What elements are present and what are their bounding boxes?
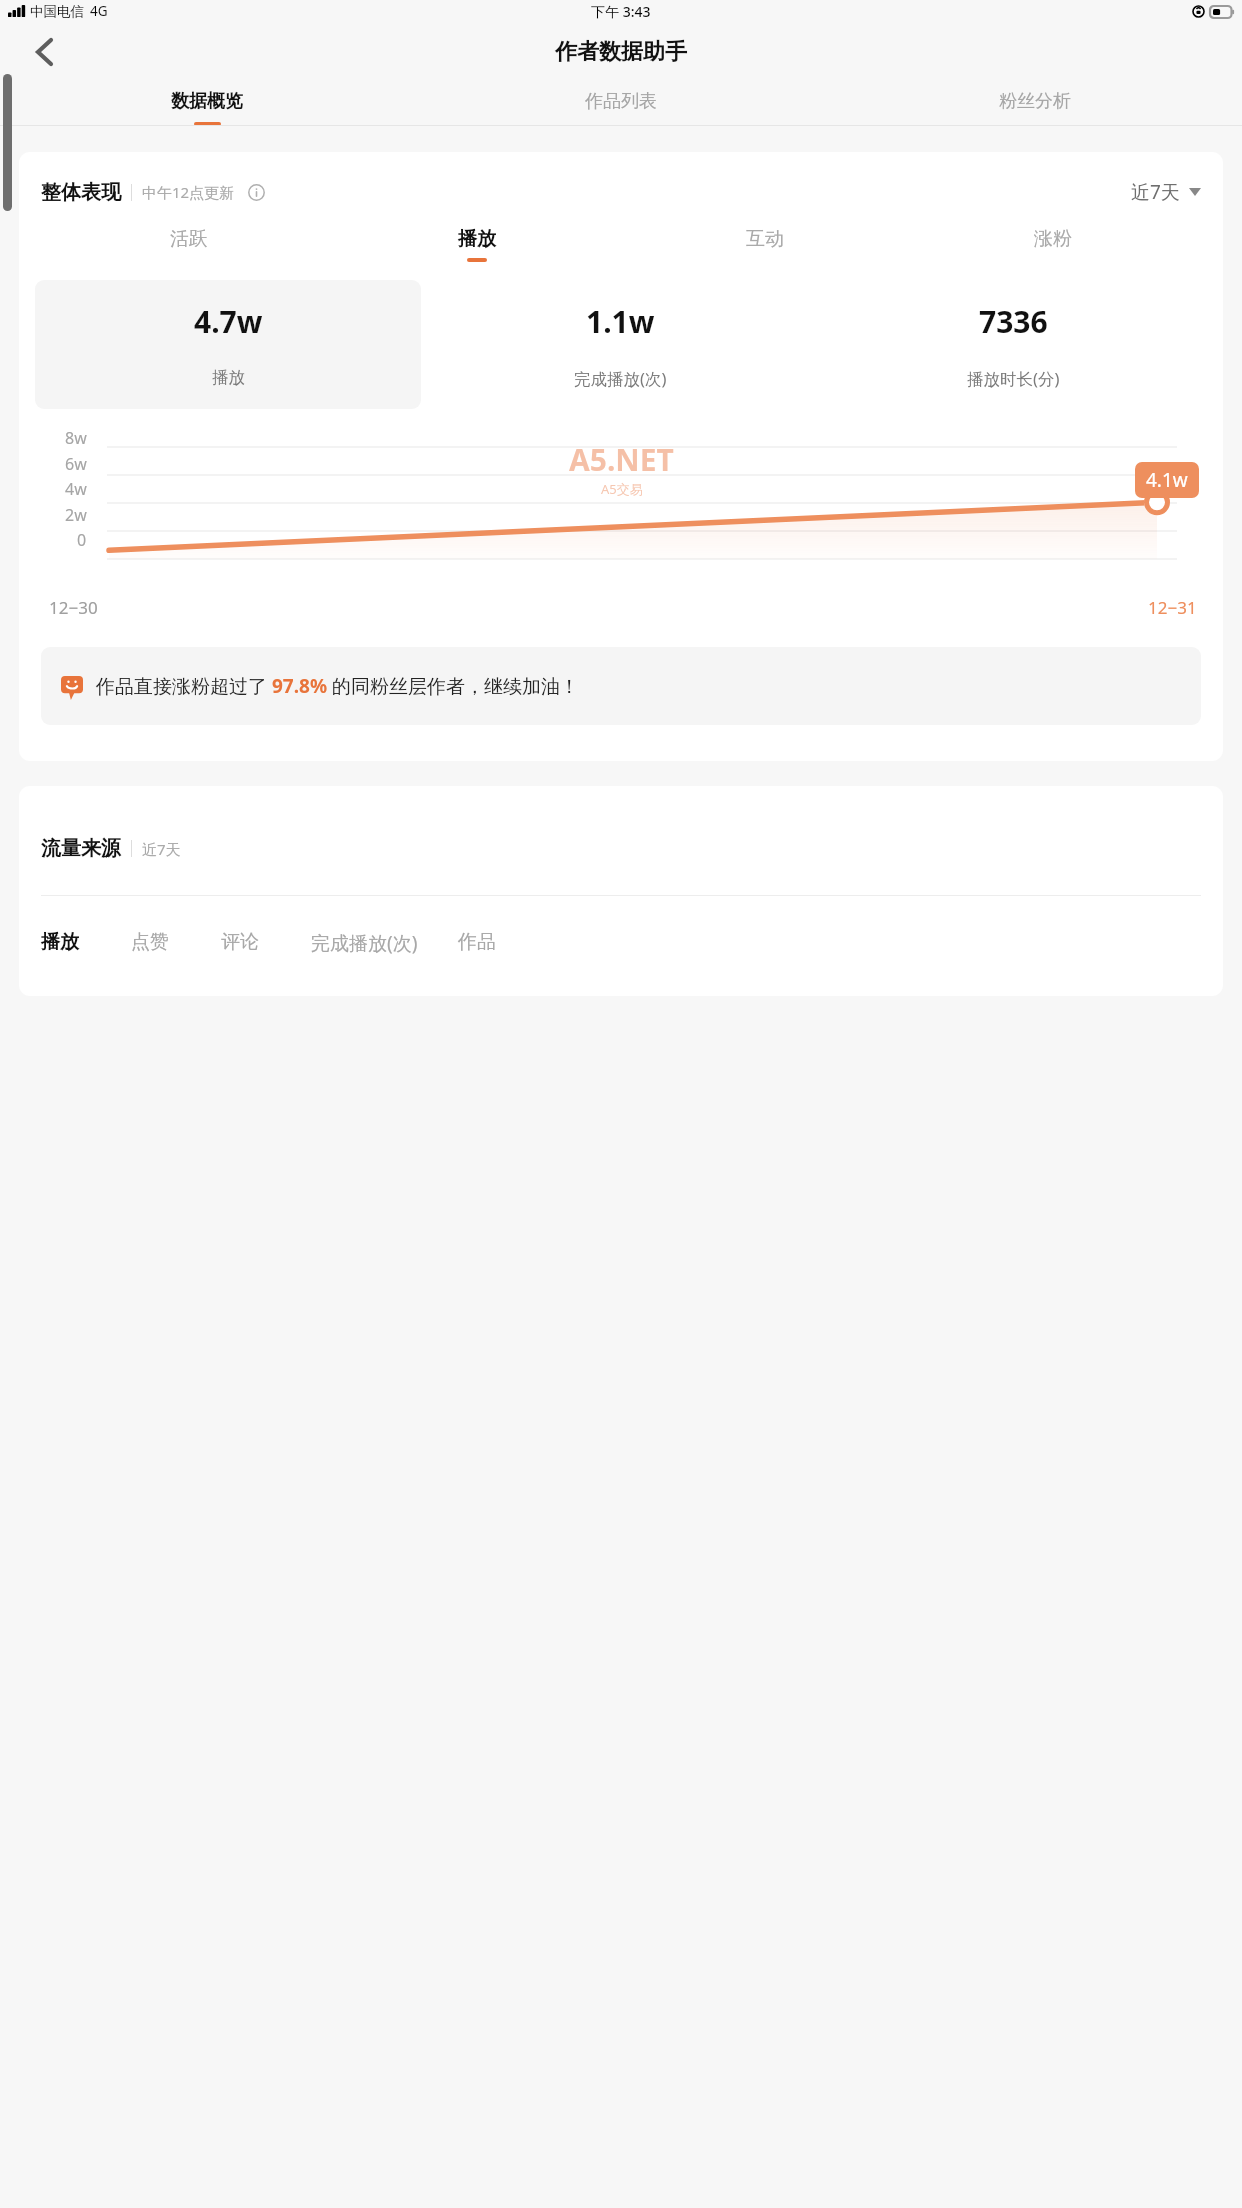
button[interactable]: 播放 [41, 930, 79, 954]
staticText: 粉丝分析 [999, 90, 1071, 113]
button[interactable]: 评论 [221, 930, 259, 954]
staticText: 整体表现 [41, 180, 121, 205]
staticText: 数据概览 [171, 90, 243, 113]
button[interactable]: 完成播放(次) [311, 930, 418, 956]
staticText: 作者数据助手 [555, 38, 687, 66]
staticText: 近7天 [142, 839, 181, 859]
staticText: A5.NET [569, 439, 674, 480]
staticText: 播放时长(分) [967, 367, 1060, 390]
staticText: 4G [90, 2, 108, 20]
staticText: 4.1w [1146, 467, 1188, 493]
staticText: 点赞 [131, 930, 169, 954]
button[interactable]: 7336 [820, 280, 1207, 411]
staticText: A5交易 [601, 480, 643, 498]
button[interactable]: 播放 [333, 227, 621, 262]
button[interactable]: 数据概览 [0, 82, 414, 126]
staticText: 活跃 [170, 227, 208, 251]
staticText: 近7天 [1131, 179, 1180, 205]
staticText: 8w [65, 427, 87, 449]
staticText: 播放 [458, 227, 496, 251]
staticText: 作品直接涨粉超过了 97.8% 的同粉丝层作者，继续加油！ [96, 673, 579, 699]
staticText: 12−30 [49, 596, 98, 619]
button[interactable]: Info [243, 179, 269, 205]
button[interactable]: 4.7w [35, 280, 421, 409]
button[interactable]: 作品列表 [414, 82, 828, 126]
button[interactable]: 近7天 [1131, 179, 1201, 205]
button[interactable]: 活跃 [45, 227, 333, 262]
staticText: 7336 [979, 301, 1048, 342]
button[interactable]: 粉丝分析 [828, 82, 1242, 126]
staticText: 互动 [746, 227, 784, 251]
staticText: 涨粉 [1034, 227, 1072, 251]
staticText: 作品 [458, 930, 496, 954]
staticText: 作品列表 [585, 90, 657, 113]
staticText: 完成播放(次) [311, 930, 418, 956]
staticText: 中国电信 [30, 3, 84, 20]
staticText: 播放 [41, 930, 79, 954]
staticText: 0 [77, 529, 87, 551]
staticText: 播放 [212, 367, 245, 388]
staticText: 流量来源 [41, 836, 121, 861]
button[interactable]: 涨粉 [909, 227, 1197, 262]
staticText: 2w [65, 504, 87, 526]
button[interactable]: 1.1w [427, 280, 814, 411]
staticText: 6w [65, 453, 87, 475]
button[interactable]: 点赞 [131, 930, 169, 954]
staticText: 12−31 [1148, 596, 1197, 619]
staticText: 中午12点更新 [142, 182, 235, 202]
button[interactable]: 互动 [621, 227, 909, 262]
staticText: 4.7w [194, 301, 263, 342]
staticText: 完成播放(次) [574, 367, 667, 390]
button[interactable]: 作品 [458, 930, 496, 954]
staticText: 4w [65, 478, 87, 500]
staticText: 下午 3:43 [591, 2, 651, 21]
button[interactable]: Back [20, 28, 68, 76]
staticText: 评论 [221, 930, 259, 954]
staticText: 1.1w [586, 301, 655, 342]
